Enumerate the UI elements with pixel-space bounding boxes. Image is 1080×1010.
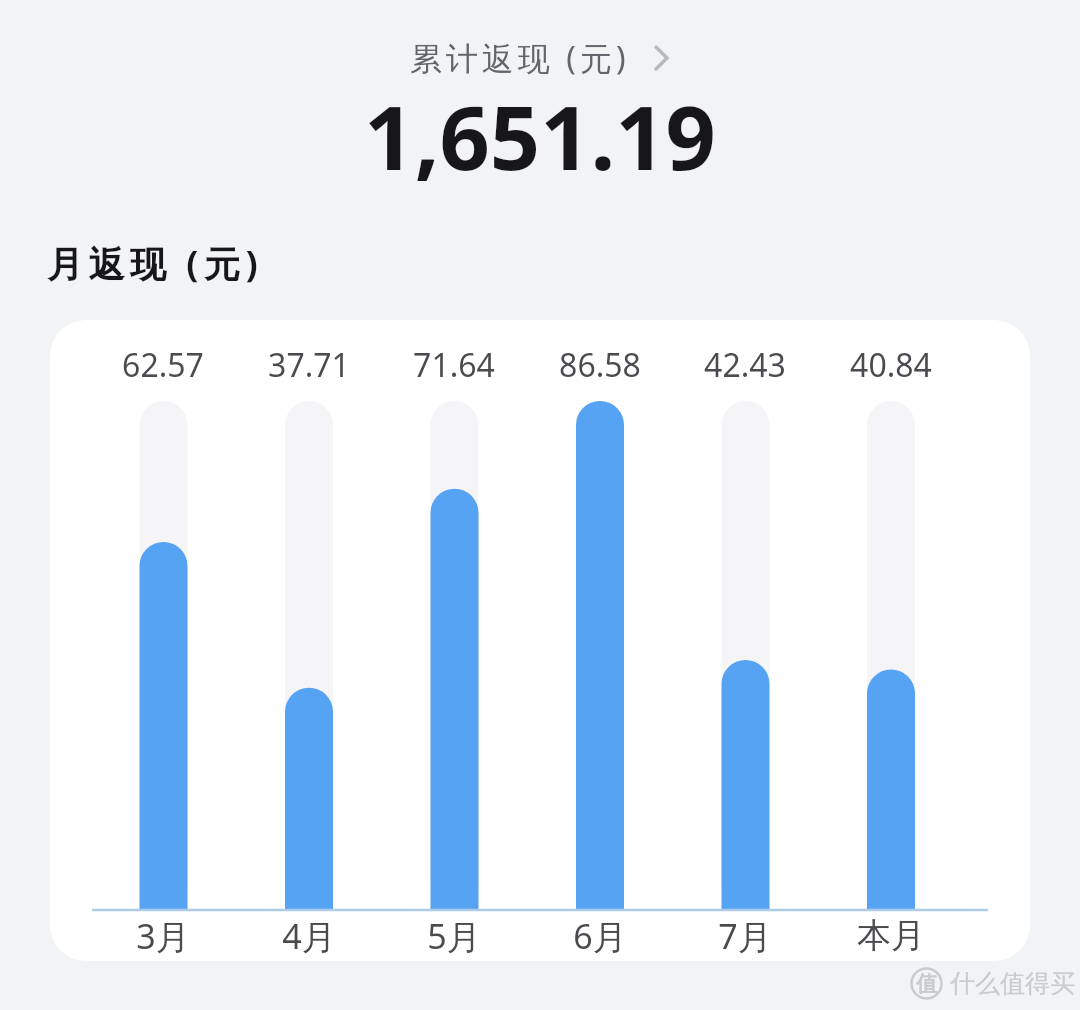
staticText: 累计返现 (元) [410,36,630,80]
staticText: 86.58 [559,343,641,387]
staticText: 7月 [718,913,772,957]
button[interactable]: 累计返现 (元) [410,36,670,80]
staticText: 5月 [427,913,481,957]
staticText: 62.57 [122,343,204,387]
staticText: 42.43 [704,343,786,387]
button[interactable]: 62.57 [50,320,1030,961]
staticText: 值 [916,971,937,997]
staticText: 4月 [282,913,336,957]
staticText: 71.64 [413,343,495,387]
staticText: 6月 [573,913,627,957]
staticText: 1,651.19 [364,76,716,196]
staticText: 40.84 [850,343,932,387]
staticText: 本月 [857,914,925,957]
staticText: 什么值得买 [950,968,1075,999]
staticText: 3月 [136,913,190,957]
staticText: 37.71 [268,343,350,387]
staticText: 月返现 (元) [47,239,264,288]
